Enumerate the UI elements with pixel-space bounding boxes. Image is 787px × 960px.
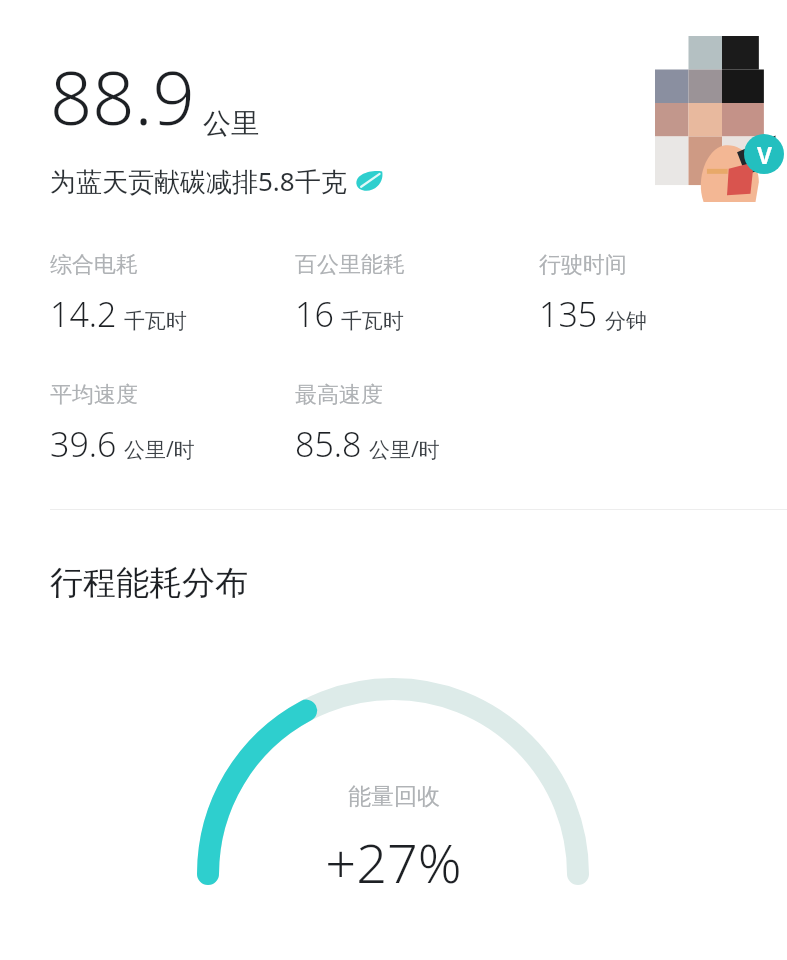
staticText: 行程能耗分布 bbox=[50, 562, 248, 604]
staticText: 行驶时间 bbox=[539, 251, 627, 279]
staticText: 88.9 bbox=[50, 46, 195, 147]
staticText: 85.8 bbox=[295, 421, 362, 467]
staticText: 千瓦时 bbox=[341, 308, 404, 334]
staticText: 千瓦时 bbox=[124, 308, 187, 334]
staticText: V bbox=[757, 139, 772, 170]
staticText: 百公里能耗 bbox=[295, 251, 405, 279]
staticText: 39.6 bbox=[50, 421, 117, 467]
button[interactable]: 平均速度 bbox=[50, 381, 295, 467]
staticText: +27% bbox=[325, 825, 462, 899]
button[interactable]: 综合电耗 bbox=[50, 251, 295, 337]
button[interactable]: 百公里能耗 bbox=[295, 251, 539, 337]
staticText: 平均速度 bbox=[50, 381, 138, 409]
staticText: 14.2 bbox=[50, 291, 117, 337]
staticText: 135 bbox=[539, 291, 598, 337]
staticText: 公里 bbox=[203, 106, 259, 141]
button[interactable]: 行驶时间 bbox=[539, 251, 771, 337]
button[interactable]: User profile avatar bbox=[655, 36, 787, 202]
staticText: 综合电耗 bbox=[50, 251, 138, 279]
staticText: 分钟 bbox=[605, 308, 647, 334]
staticText: 为蓝天贡献碳减排5.8千克 bbox=[50, 163, 347, 199]
button[interactable]: 最高速度 bbox=[295, 381, 539, 467]
staticText: 最高速度 bbox=[295, 381, 383, 409]
staticText: 能量回收 bbox=[348, 782, 440, 811]
staticText: 16 bbox=[295, 291, 334, 337]
button[interactable]: 能量回收 bbox=[0, 614, 787, 960]
staticText: 公里/时 bbox=[369, 435, 440, 464]
staticText: 公里/时 bbox=[124, 435, 195, 464]
